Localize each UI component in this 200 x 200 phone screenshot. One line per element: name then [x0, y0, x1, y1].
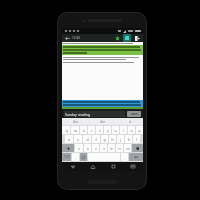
- staticText: i: [123, 128, 124, 133]
- button[interactable]: r: [88, 126, 95, 134]
- staticText: t: [99, 128, 101, 133]
- button[interactable]: n: [116, 144, 123, 152]
- button[interactable]: d: [83, 135, 91, 143]
- staticText: r: [91, 128, 93, 133]
- button[interactable]: the: [89, 118, 116, 125]
- button[interactable]: Highlight: [123, 34, 131, 42]
- button[interactable]: Backspace: [132, 144, 143, 152]
- button[interactable]: the: [62, 118, 89, 125]
- staticText: .: [124, 155, 125, 160]
- staticText: v: [103, 146, 105, 151]
- button[interactable]: h: [109, 135, 116, 143]
- staticText: the: [73, 120, 78, 124]
- button[interactable]: t: [96, 126, 103, 134]
- button[interactable]: e: [80, 126, 87, 134]
- staticText: k: [128, 137, 130, 142]
- button[interactable]: [63, 101, 142, 106]
- staticText: the: [100, 120, 105, 124]
- button[interactable]: i: [120, 126, 127, 134]
- staticText: z: [78, 146, 80, 151]
- button[interactable]: Emoji: [80, 153, 87, 161]
- staticText: d: [86, 137, 89, 142]
- staticText: c: [95, 146, 97, 151]
- button[interactable]: v: [100, 144, 107, 152]
- button[interactable]: j: [117, 135, 124, 143]
- button[interactable]: b: [108, 144, 115, 152]
- button[interactable]: p: [136, 126, 143, 134]
- button[interactable]: [63, 46, 142, 54]
- staticText: x: [87, 146, 89, 151]
- staticText: q: [65, 128, 68, 133]
- button[interactable]: a: [65, 135, 73, 143]
- staticText: e: [83, 128, 85, 133]
- button[interactable]: m: [124, 144, 131, 152]
- button[interactable]: o: [128, 126, 135, 134]
- button[interactable]: l: [133, 135, 140, 143]
- staticText: m: [126, 146, 130, 151]
- button[interactable]: Sunday reading: [64, 111, 125, 117]
- staticText: it: [129, 120, 131, 124]
- button[interactable]: Back: [64, 35, 71, 42]
- button[interactable]: z: [75, 144, 83, 152]
- button[interactable]: q: [62, 126, 70, 134]
- button[interactable]: Recents: [103, 162, 123, 171]
- staticText: u: [114, 128, 117, 133]
- staticText: h: [111, 137, 114, 142]
- staticText: g: [103, 137, 106, 142]
- button[interactable]: x: [84, 144, 91, 152]
- button[interactable]: Home: [83, 162, 103, 171]
- staticText: n: [118, 146, 121, 151]
- staticText: l: [136, 137, 137, 142]
- staticText: a: [68, 137, 70, 142]
- staticText: s: [77, 137, 79, 142]
- button[interactable]: Hide keyboard: [62, 162, 83, 171]
- staticText: p: [138, 128, 141, 133]
- staticText: o: [130, 128, 133, 133]
- button[interactable]: save: [127, 111, 141, 117]
- staticText: f: [95, 137, 97, 142]
- button[interactable]: s: [74, 135, 82, 143]
- staticText: Sunday reading: [65, 112, 90, 117]
- button[interactable]: g: [101, 135, 108, 143]
- button[interactable]: f: [92, 135, 100, 143]
- staticText: 12:45: [72, 36, 81, 40]
- staticText: ?123: [64, 155, 70, 159]
- staticText: save: [131, 112, 138, 116]
- button[interactable]: Shift: [62, 144, 74, 152]
- button[interactable]: u: [112, 126, 119, 134]
- button[interactable]: w: [71, 126, 79, 134]
- button[interactable]: c: [92, 144, 99, 152]
- staticText: ,: [75, 155, 76, 160]
- staticText: j: [120, 137, 121, 142]
- button[interactable]: Enter: [129, 153, 143, 161]
- button[interactable]: Switch input method: [123, 162, 143, 171]
- button[interactable]: k: [125, 135, 132, 143]
- staticText: b: [110, 146, 113, 151]
- staticText: w: [74, 128, 77, 133]
- button[interactable]: y: [104, 126, 111, 134]
- button[interactable]: Share note: [133, 34, 141, 42]
- button[interactable]: .: [121, 153, 128, 161]
- staticText: y: [107, 128, 109, 133]
- button[interactable]: it: [116, 118, 143, 125]
- button[interactable]: ,: [72, 153, 79, 161]
- button[interactable]: Bookmark: [113, 34, 121, 42]
- button[interactable]: Symbols: [62, 153, 71, 161]
